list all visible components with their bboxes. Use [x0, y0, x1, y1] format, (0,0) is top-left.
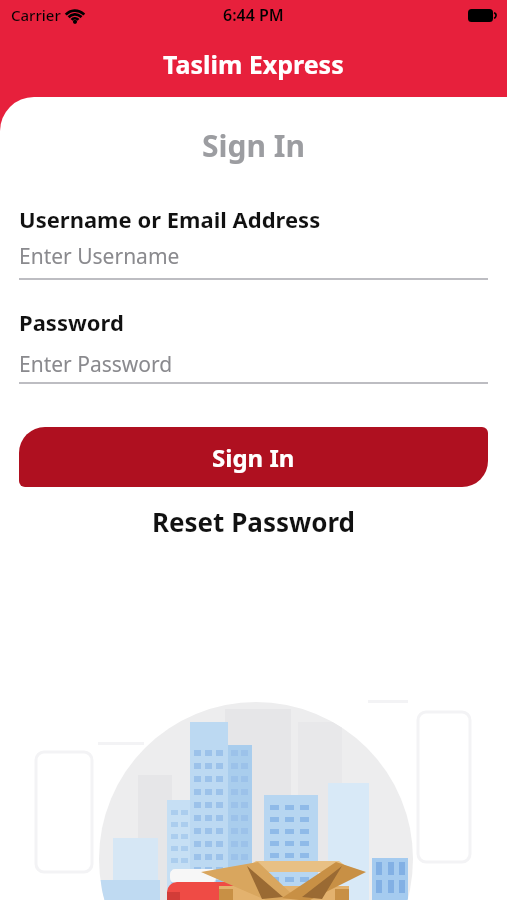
staticText: 6:44 PM — [223, 4, 284, 26]
staticText: Username or Email Address — [19, 204, 321, 234]
staticText: Sign In — [0, 125, 507, 166]
button[interactable]: Enter Password — [19, 350, 488, 379]
staticText: Password — [19, 307, 124, 337]
staticText: Sign In — [212, 441, 295, 474]
button[interactable]: Sign In — [19, 427, 488, 487]
button[interactable]: Reset Password — [0, 504, 507, 539]
staticText: Taslim Express — [163, 47, 344, 81]
staticText: Carrier — [11, 5, 61, 25]
button[interactable]: Enter Username — [19, 242, 488, 271]
